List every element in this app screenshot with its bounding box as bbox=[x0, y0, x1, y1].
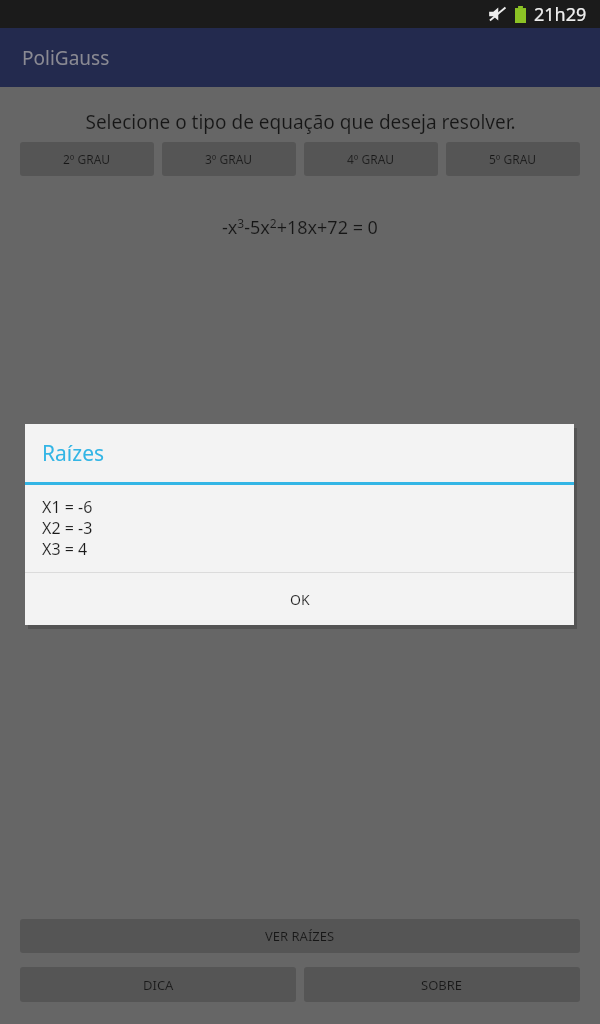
staticText: X3 = 4 bbox=[42, 538, 88, 559]
button[interactable]: 2º GRAU bbox=[20, 142, 154, 176]
staticText: 3º GRAU bbox=[205, 151, 253, 167]
staticText: OK bbox=[290, 590, 310, 609]
staticText: 5º GRAU bbox=[489, 151, 537, 167]
staticText: VER RAÍZES bbox=[265, 927, 335, 945]
staticText: X2 = -3 bbox=[42, 517, 93, 538]
staticText: 21h29 bbox=[534, 2, 587, 27]
button[interactable]: 3º GRAU bbox=[162, 142, 296, 176]
staticText: DICA bbox=[143, 976, 174, 994]
button[interactable]: SOBRE bbox=[304, 967, 580, 1002]
staticText: SOBRE bbox=[421, 976, 463, 994]
button[interactable]: VER RAÍZES bbox=[20, 919, 580, 953]
staticText: 2º GRAU bbox=[63, 151, 111, 167]
other: Silent mode bbox=[488, 6, 507, 22]
staticText: Raízes bbox=[42, 439, 105, 468]
staticText: PoliGauss bbox=[22, 45, 110, 71]
button[interactable]: 5º GRAU bbox=[446, 142, 580, 176]
button[interactable]: 4º GRAU bbox=[304, 142, 438, 176]
button[interactable]: DICA bbox=[20, 967, 296, 1002]
staticText: -x3-5x2+18x+72 = 0 bbox=[222, 215, 378, 240]
button[interactable]: OK bbox=[25, 573, 574, 625]
staticText: 4º GRAU bbox=[347, 151, 395, 167]
staticText: Selecione o tipo de equação que deseja r… bbox=[85, 109, 516, 135]
staticText: X1 = -6 bbox=[42, 496, 93, 517]
